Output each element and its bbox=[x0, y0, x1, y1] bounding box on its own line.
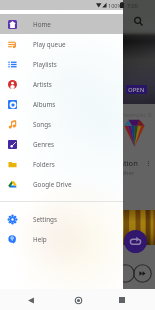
staticText: 7:00 bbox=[127, 2, 138, 9]
button[interactable]: More options bbox=[143, 158, 152, 168]
button[interactable]: Google Drive bbox=[0, 174, 123, 194]
button[interactable]: Folders bbox=[0, 154, 123, 174]
staticText: Genres bbox=[33, 140, 55, 149]
staticText: Photographer bbox=[95, 169, 135, 177]
staticText: Songs bbox=[33, 120, 52, 129]
button[interactable]: OPEN bbox=[126, 85, 147, 94]
button[interactable]: Home bbox=[0, 14, 123, 34]
button[interactable]: Shuffle bbox=[124, 230, 147, 253]
staticText: Playlists bbox=[33, 60, 57, 69]
staticText: Settings bbox=[33, 215, 57, 224]
staticText: Play queue bbox=[33, 40, 66, 49]
staticText: Folders bbox=[33, 160, 55, 169]
button[interactable]: Home bbox=[69, 291, 87, 309]
staticText: Artists bbox=[33, 80, 52, 89]
button[interactable]: Next track bbox=[133, 264, 152, 283]
button[interactable]: Back bbox=[22, 291, 40, 309]
button[interactable]: Help bbox=[0, 229, 123, 249]
staticText: Google Drive bbox=[33, 180, 72, 189]
staticText: Compilation bbox=[95, 158, 138, 168]
staticText: Albums bbox=[33, 100, 56, 109]
staticText: OPEN bbox=[128, 86, 145, 94]
button[interactable]: Playlists bbox=[0, 54, 123, 74]
staticText: Electronic Dance bbox=[121, 111, 152, 118]
button[interactable]: Albums bbox=[0, 94, 123, 114]
button[interactable]: Play queue bbox=[0, 34, 123, 54]
button[interactable]: Settings bbox=[0, 209, 123, 229]
staticText: 100% bbox=[108, 2, 123, 9]
staticText: Help bbox=[33, 235, 47, 244]
button[interactable]: Songs bbox=[0, 114, 123, 134]
button[interactable]: Artists bbox=[0, 74, 123, 94]
button[interactable]: Recents bbox=[113, 291, 131, 309]
button[interactable]: Genres bbox=[0, 134, 123, 154]
button[interactable]: Play bbox=[116, 264, 135, 283]
staticText: Home bbox=[33, 20, 51, 29]
button[interactable]: Search bbox=[131, 14, 145, 28]
